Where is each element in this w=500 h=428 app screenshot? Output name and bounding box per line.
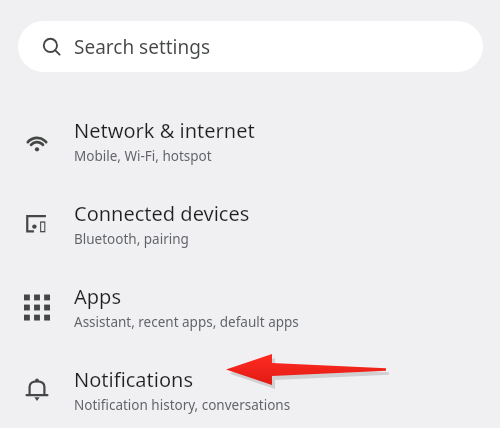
other: Connected devices	[24, 211, 50, 237]
other: Network and internet	[24, 128, 50, 154]
staticText: Connected devices	[74, 200, 250, 227]
staticText: Network & internet	[74, 117, 255, 144]
button[interactable]: Apps	[0, 265, 500, 348]
staticText: Mobile, Wi-Fi, hotspot	[74, 147, 212, 165]
staticText: Apps	[74, 283, 121, 310]
staticText: Notifications	[74, 366, 193, 393]
staticText: Search settings	[74, 34, 211, 60]
staticText: Notification history, conversations	[74, 396, 291, 414]
button[interactable]: Connected devices	[0, 182, 500, 265]
staticText: Assistant, recent apps, default apps	[74, 313, 299, 331]
other: Apps	[24, 294, 50, 320]
button[interactable]: Notifications	[0, 348, 500, 428]
button[interactable]: Search settings	[18, 21, 483, 72]
staticText: Bluetooth, pairing	[74, 230, 189, 248]
button[interactable]: Network and internet	[0, 99, 500, 182]
other: Notifications	[24, 377, 50, 403]
